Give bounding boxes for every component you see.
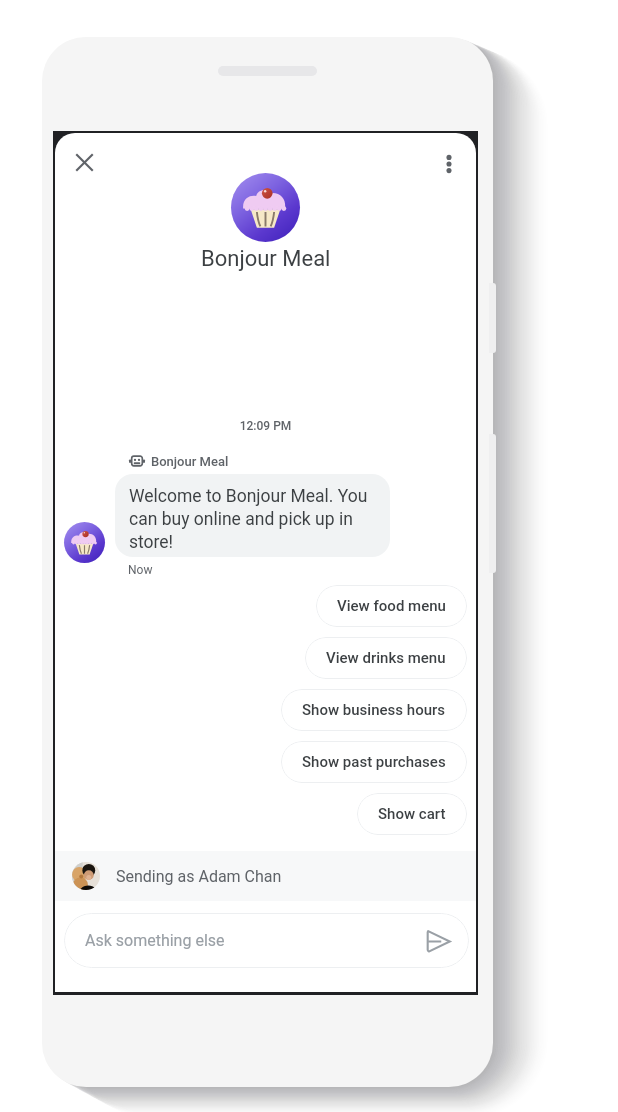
staticText: View drinks menu bbox=[326, 649, 446, 667]
staticText: Now bbox=[128, 563, 153, 577]
button[interactable]: Sending as Adam Chan bbox=[55, 851, 476, 901]
staticText: 12:09 PM bbox=[55, 419, 476, 433]
staticText: Ask something else bbox=[85, 931, 225, 950]
other: Send bbox=[423, 926, 453, 956]
staticText: Show past purchases bbox=[302, 753, 446, 771]
button[interactable]: View food menu bbox=[316, 585, 467, 627]
staticText: View food menu bbox=[337, 597, 446, 615]
button[interactable]: Close bbox=[63, 141, 105, 183]
staticText: Bonjour Meal bbox=[151, 454, 229, 469]
staticText: Welcome to Bonjour Meal. You can buy onl… bbox=[129, 486, 376, 552]
staticText: Sending as Adam Chan bbox=[116, 867, 282, 886]
button[interactable]: View drinks menu bbox=[305, 637, 467, 679]
staticText: Bonjour Meal bbox=[201, 246, 331, 272]
staticText: Show cart bbox=[378, 805, 446, 823]
button[interactable]: Show cart bbox=[357, 793, 467, 835]
button[interactable]: Ask something else bbox=[64, 913, 469, 968]
staticText: Show business hours bbox=[302, 701, 446, 719]
button[interactable]: Show business hours bbox=[281, 689, 467, 731]
button[interactable]: Welcome to Bonjour Meal. You can buy onl… bbox=[115, 474, 390, 557]
button[interactable]: More options bbox=[428, 143, 470, 185]
button[interactable]: Show past purchases bbox=[281, 741, 467, 783]
